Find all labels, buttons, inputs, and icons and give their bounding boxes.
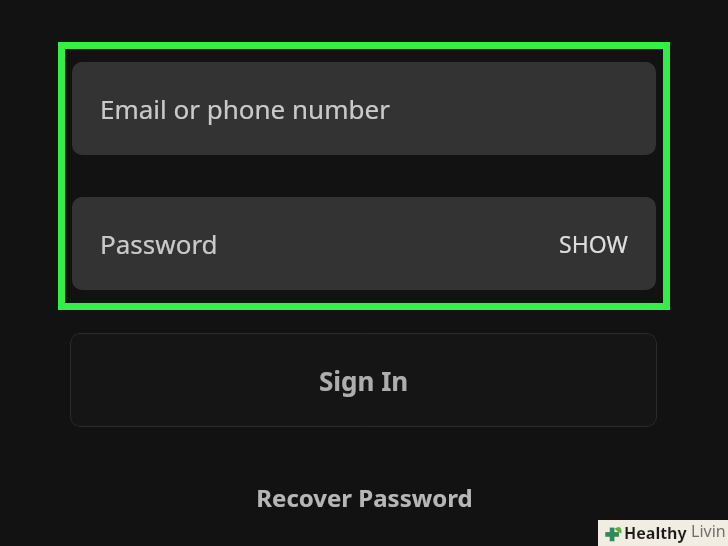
staticText: Password <box>100 226 218 261</box>
staticText: Recover Password <box>256 481 473 514</box>
staticText: SHOW <box>559 228 628 259</box>
staticText: Sign In <box>319 363 409 398</box>
button[interactable]: Email or phone number <box>72 62 656 155</box>
button[interactable]: SHOW <box>559 228 628 259</box>
button[interactable]: Sign In <box>70 333 657 427</box>
staticText: Email or phone number <box>100 91 390 126</box>
button[interactable]: Recover Password <box>0 478 728 516</box>
staticText: Healthy <box>624 522 687 544</box>
staticText: Living <box>691 520 728 546</box>
button[interactable]: Password <box>72 197 656 290</box>
